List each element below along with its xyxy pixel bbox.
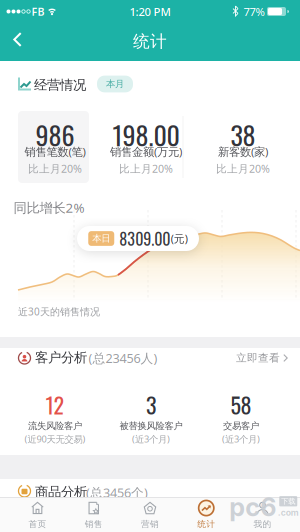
staticText: .com [278,507,299,518]
button[interactable]: 统计 [180,498,232,530]
staticText: 3 [146,388,156,421]
staticText: 12 [45,388,64,421]
staticText: 本月 [106,78,124,90]
staticText: 首页 [28,518,46,529]
staticText: (近3个月) [132,433,170,445]
staticText: pc6 [229,492,276,522]
staticText: (近3个月) [222,433,260,445]
staticText: 198.00 [112,115,179,154]
staticText: 8309.00 [119,227,170,250]
staticText: 近30天的销售情况 [18,305,100,318]
staticText: 1:20 PM [129,4,170,19]
staticText: 38 [230,115,255,154]
staticText: (元) [171,231,188,246]
staticText: 销售笔数(笔) [24,144,85,159]
staticText: 本日 [92,233,110,244]
staticText: 比上月20% [28,161,82,176]
staticText: 商品分析 [35,484,87,500]
button[interactable]: 营销 [124,498,176,530]
staticText: 新客数(家) [218,144,268,159]
staticText: (总23456人) [88,349,157,367]
staticText: 统计 [197,518,215,529]
staticText: 比上月20% [216,161,270,176]
staticText: 销售金额(万元) [110,144,182,159]
staticText: 比上月20% [119,161,173,176]
staticText: 流失风险客户 [28,420,82,432]
button[interactable]: 我的 [236,498,288,530]
staticText: 经营情况 [34,77,86,93]
staticText: 同比增长2% [13,198,84,217]
staticText: 58 [230,388,251,421]
staticText: (近90天无交易) [24,433,85,445]
button[interactable]: 立即查看 [236,351,288,365]
staticText: 我的 [253,518,271,529]
staticText: 交易客户 [223,420,259,432]
staticText: 销售 [85,518,103,529]
button[interactable]: Back [7,26,27,52]
staticText: 客户分析 [35,349,87,366]
button[interactable]: 本月 [97,76,133,92]
staticText: 营销 [141,518,159,529]
staticText: 下载 [281,497,295,506]
staticText: 77% [243,4,264,19]
button[interactable]: 销售 [68,498,120,530]
button[interactable]: 首页 [11,498,63,530]
staticText: 986 [35,115,74,154]
staticText: (总3456个) [86,484,148,501]
staticText: 被替换风险客户 [119,420,182,432]
staticText: FB [31,4,44,19]
staticText: 统计 [133,31,167,52]
staticText: 立即查看 [236,351,280,365]
